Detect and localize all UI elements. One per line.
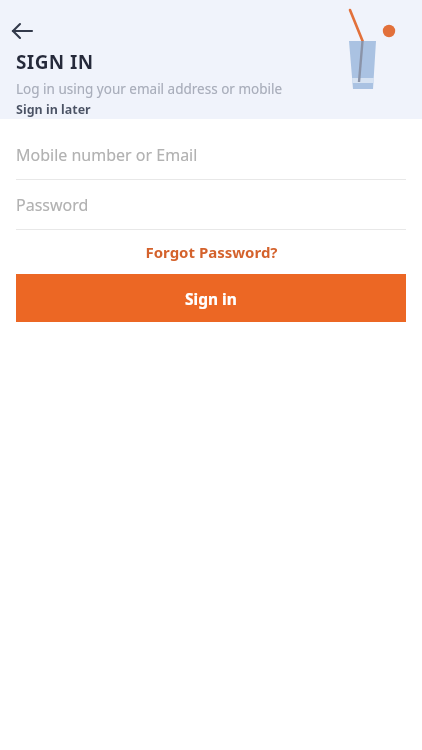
button[interactable]: Sign in — [16, 274, 406, 322]
staticText: SIGN IN — [16, 49, 94, 75]
staticText: Forgot Password? — [145, 242, 278, 262]
staticText: Log in using your email address or mobil… — [16, 80, 283, 98]
staticText: Sign in later — [16, 101, 91, 118]
button[interactable]: Mobile number or Email — [16, 130, 406, 180]
staticText: Mobile number or Email — [16, 144, 198, 166]
button[interactable]: Forgot Password? — [137, 236, 286, 268]
button[interactable]: Back — [6, 14, 40, 48]
staticText: Sign in — [185, 288, 237, 309]
staticText: Password — [16, 194, 89, 216]
button[interactable]: Sign in later — [16, 101, 91, 118]
button[interactable]: Password — [16, 180, 406, 230]
